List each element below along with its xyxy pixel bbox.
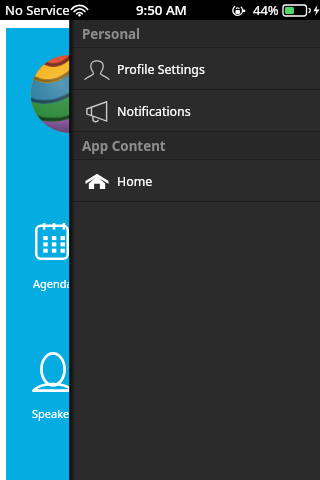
other: Rotation lock bbox=[232, 4, 245, 17]
button[interactable]: Notifications bbox=[70, 90, 320, 132]
other: Wi-Fi bbox=[72, 5, 87, 16]
staticText: No Service bbox=[5, 1, 70, 19]
button[interactable]: Agenda bbox=[0, 210, 112, 290]
staticText: Home bbox=[117, 173, 153, 190]
staticText: App Content bbox=[82, 137, 166, 155]
staticText: 9:50 AM bbox=[136, 1, 187, 19]
button[interactable]: Profile Settings bbox=[70, 48, 320, 90]
button[interactable]: Home bbox=[70, 160, 320, 202]
staticText: Notifications bbox=[117, 103, 191, 120]
other: Battery 44 percent charging bbox=[283, 5, 320, 16]
staticText: Profile Settings bbox=[117, 61, 205, 78]
staticText: Personal bbox=[82, 25, 141, 43]
staticText: Speaker bbox=[32, 406, 74, 421]
staticText: 44% bbox=[253, 1, 279, 19]
staticText: Agenda bbox=[33, 276, 73, 291]
button[interactable]: Speaker bbox=[0, 340, 112, 420]
